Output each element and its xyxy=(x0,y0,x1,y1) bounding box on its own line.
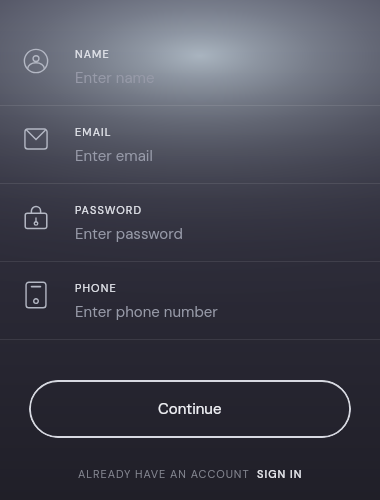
button[interactable]: Email field xyxy=(0,106,380,183)
staticText: Enter name xyxy=(75,68,155,88)
button[interactable]: Password field xyxy=(0,184,380,261)
staticText: Enter password xyxy=(75,224,183,244)
button[interactable]: Continue xyxy=(29,380,351,438)
button[interactable]: Phone field xyxy=(0,262,380,339)
staticText: PASSWORD xyxy=(75,203,143,217)
staticText: Continue xyxy=(158,399,222,419)
button[interactable]: Name field xyxy=(0,28,380,105)
staticText: ALREADY HAVE AN ACCOUNT xyxy=(78,467,250,481)
staticText: SIGN IN xyxy=(257,467,303,481)
staticText: Enter phone number xyxy=(75,302,218,322)
button[interactable]: SIGN IN xyxy=(257,467,303,481)
other: Email field xyxy=(22,125,50,153)
staticText: PHONE xyxy=(75,281,117,295)
other: Name field xyxy=(22,47,50,75)
other: Password field xyxy=(22,203,50,231)
staticText: NAME xyxy=(75,47,110,61)
staticText: EMAIL xyxy=(75,125,112,139)
staticText: Enter email xyxy=(75,146,153,166)
other: Phone field xyxy=(22,281,50,309)
